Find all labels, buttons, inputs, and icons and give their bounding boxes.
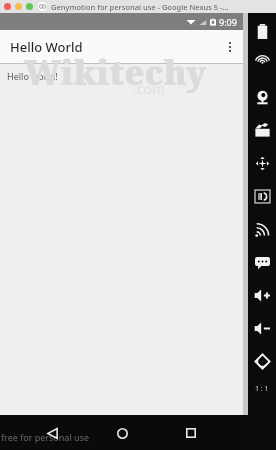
- staticText: Hello World: [10, 38, 83, 56]
- button[interactable]: Rotate: [248, 345, 276, 378]
- button[interactable]: Camera: [248, 81, 276, 114]
- button[interactable]: GPS: [248, 48, 276, 81]
- staticText: Wikitechy: [24, 49, 207, 95]
- button[interactable]: Close: [4, 3, 11, 10]
- button[interactable]: Scale 1:1: [248, 378, 276, 400]
- button[interactable]: Accelerometer: [248, 147, 276, 180]
- button[interactable]: Home: [105, 416, 139, 450]
- button[interactable]: Recents: [174, 416, 208, 450]
- staticText: 9:09: [219, 16, 237, 28]
- button[interactable]: Battery: [248, 15, 276, 48]
- button[interactable]: Volume up: [248, 279, 276, 312]
- staticText: Genymotion for personal use - Google Nex…: [51, 2, 229, 12]
- button[interactable]: Identifiers: [248, 180, 276, 213]
- button[interactable]: Volume down: [248, 312, 276, 345]
- button[interactable]: Video: [248, 114, 276, 147]
- staticText: .com: [133, 79, 166, 98]
- button[interactable]: More options: [217, 30, 243, 63]
- button[interactable]: Minimize: [15, 3, 22, 10]
- staticText: 1 : 1: [255, 384, 269, 394]
- button[interactable]: Network: [248, 213, 276, 246]
- staticText: Hello world!: [7, 70, 58, 82]
- staticText: free for personal use: [1, 431, 90, 443]
- button[interactable]: Zoom: [26, 3, 33, 10]
- button[interactable]: Back: [35, 416, 69, 450]
- button[interactable]: SMS: [248, 246, 276, 279]
